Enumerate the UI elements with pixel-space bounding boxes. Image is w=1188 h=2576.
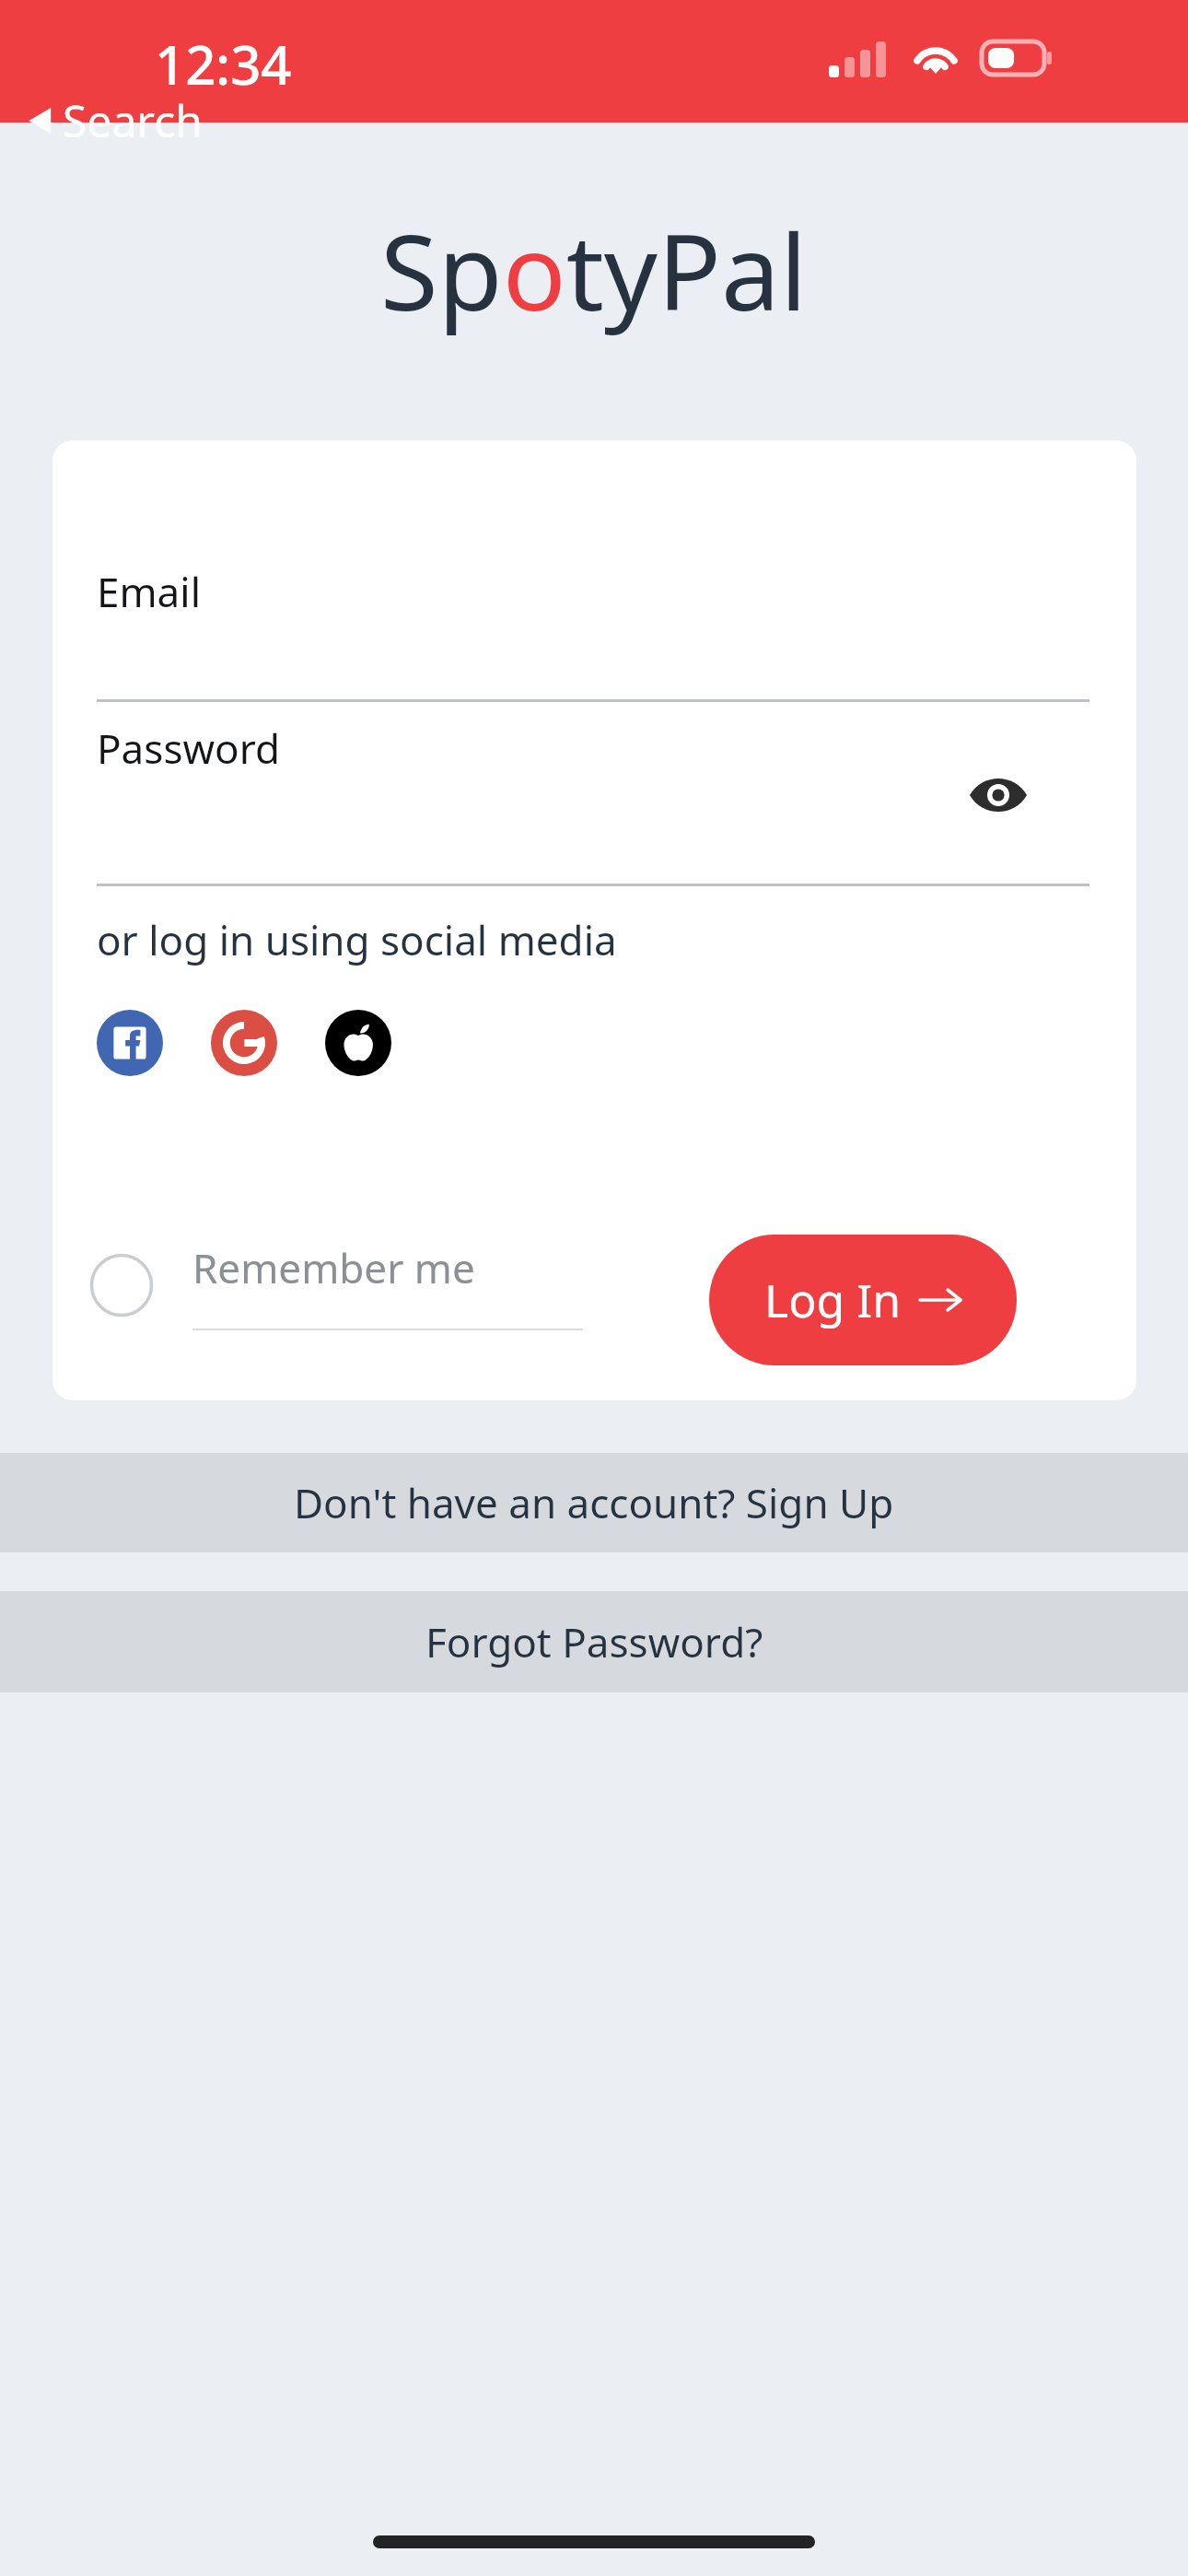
staticText: Search [63, 90, 203, 150]
staticText: Don't have an account? Sign Up [294, 1475, 894, 1530]
button[interactable]: Log in with Apple [325, 1010, 391, 1076]
button[interactable]: Log in with Facebook [97, 1010, 163, 1076]
staticText: Email [97, 564, 201, 619]
button[interactable]: Don't have an account? Sign Up [0, 1453, 1188, 1552]
button[interactable]: Log In [709, 1235, 1017, 1365]
staticText: or log in using social media [97, 912, 617, 967]
button[interactable]: Show password [957, 767, 1040, 824]
button[interactable]: Remember me [89, 1240, 583, 1330]
staticText: Remember me [192, 1240, 475, 1295]
button[interactable]: Log in with Google [211, 1010, 277, 1076]
staticText: Password [97, 720, 281, 776]
staticText: Forgot Password? [425, 1614, 763, 1669]
button[interactable]: Back to Search [28, 90, 203, 150]
staticText: Log In [764, 1269, 902, 1331]
staticText: 12:34 [155, 28, 292, 100]
button[interactable]: Forgot Password? [0, 1591, 1188, 1692]
staticText: SpotyPal [380, 198, 808, 341]
